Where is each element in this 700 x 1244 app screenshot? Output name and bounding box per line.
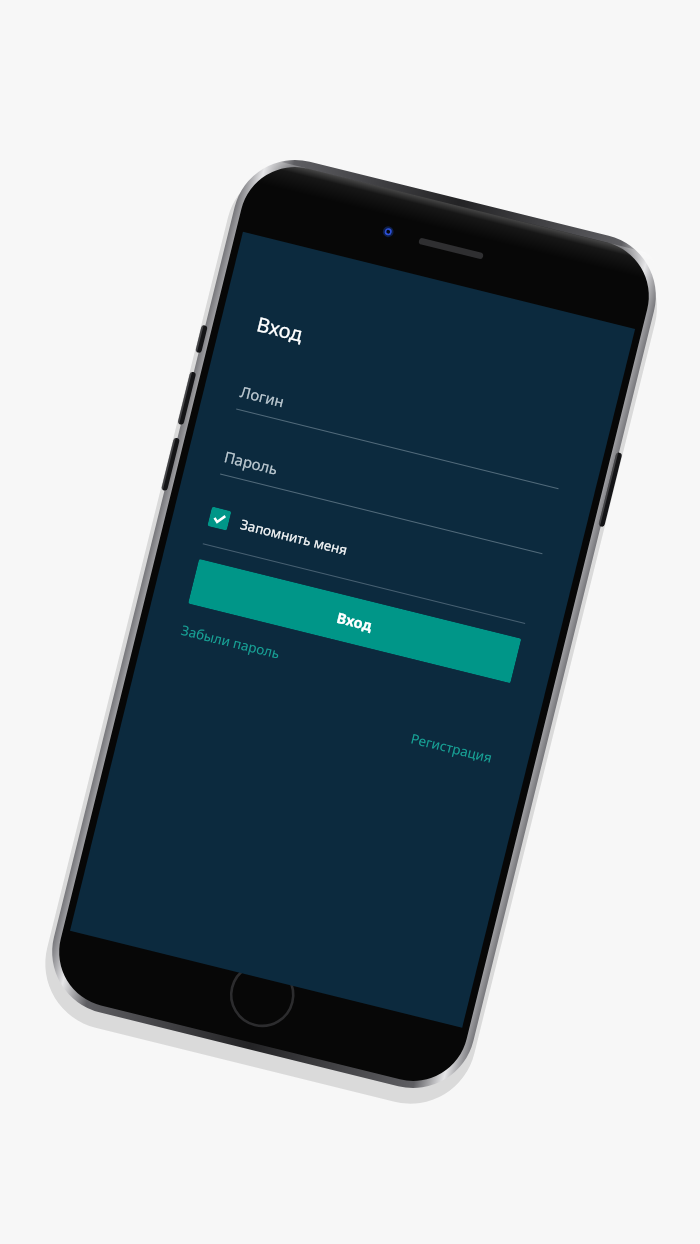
button[interactable]: Запомнить меня	[207, 504, 535, 609]
button[interactable]: Пароль	[220, 446, 549, 554]
button[interactable]: Логин	[236, 381, 565, 489]
button[interactable]: Забыли пароль	[179, 619, 282, 665]
button[interactable]: Регистрация	[409, 727, 494, 769]
staticText: Вход	[335, 607, 375, 635]
staticText: Запомнить меня	[239, 515, 350, 559]
button[interactable]: Вход	[188, 559, 521, 683]
staticText: Пароль	[222, 446, 280, 479]
staticText: Логин	[238, 381, 287, 411]
staticText: Вход	[254, 310, 306, 348]
